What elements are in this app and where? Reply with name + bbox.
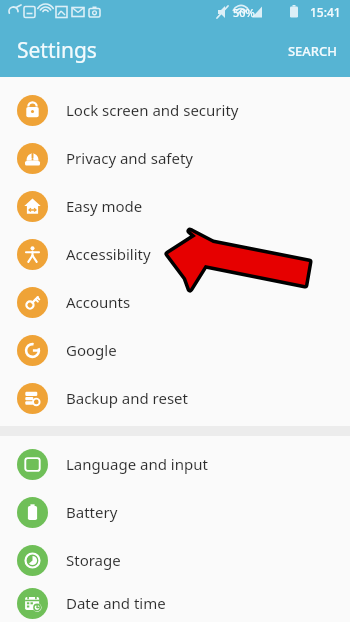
- staticText: 15:41: [310, 4, 341, 20]
- button[interactable]: Google: [0, 326, 350, 374]
- staticText: Storage: [66, 550, 121, 570]
- button[interactable]: Accounts: [0, 278, 350, 326]
- button[interactable]: Language and input: [0, 440, 350, 488]
- button[interactable]: Storage: [0, 536, 350, 584]
- staticText: Accounts: [66, 292, 131, 312]
- staticText: Battery: [66, 502, 118, 522]
- button[interactable]: Accessibility: [0, 230, 350, 278]
- staticText: Date and time: [66, 593, 166, 613]
- staticText: Lock screen and security: [66, 100, 239, 120]
- staticText: Language and input: [66, 454, 208, 474]
- staticText: Easy mode: [66, 196, 143, 216]
- staticText: SEARCH: [287, 42, 337, 60]
- staticText: Settings: [17, 36, 97, 65]
- staticText: Privacy and safety: [66, 148, 194, 168]
- button[interactable]: Lock screen and security: [0, 86, 350, 134]
- button[interactable]: Backup and reset: [0, 374, 350, 422]
- staticText: Backup and reset: [66, 388, 188, 408]
- button[interactable]: Battery: [0, 488, 350, 536]
- button[interactable]: Easy mode: [0, 182, 350, 230]
- button[interactable]: Date and time: [0, 584, 350, 622]
- staticText: 50%: [233, 5, 255, 20]
- button[interactable]: Privacy and safety: [0, 134, 350, 182]
- staticText: Google: [66, 340, 117, 360]
- staticText: Accessibility: [66, 244, 151, 264]
- button[interactable]: SEARCH: [274, 32, 350, 70]
